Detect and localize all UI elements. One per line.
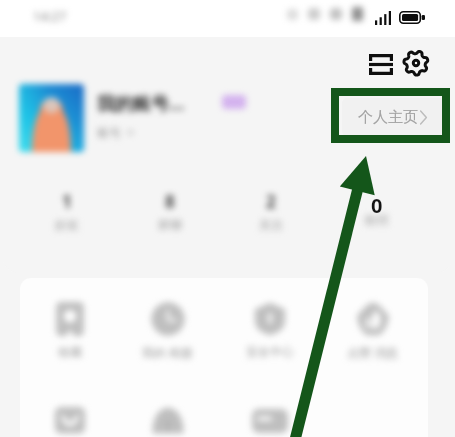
staticText: 8 [165, 190, 175, 213]
staticText: 好友 [55, 217, 79, 232]
staticText: 收藏 [58, 344, 82, 359]
button[interactable]: Nickname [97, 91, 185, 116]
button[interactable]: Cloud [123, 403, 213, 437]
button[interactable]: 2 [241, 190, 301, 240]
button[interactable]: 8 [140, 190, 200, 240]
button[interactable]: Profile avatar [19, 84, 84, 152]
button[interactable]: Settings [394, 41, 438, 85]
button[interactable]: Likes [328, 302, 418, 364]
staticText: 安全中心 [246, 344, 294, 359]
button[interactable]: 粉丝 [347, 190, 407, 240]
staticText: 关注 [259, 217, 283, 232]
button[interactable]: 0 [353, 192, 401, 216]
staticText: 0 [371, 192, 383, 216]
staticText: 我的账号… [97, 91, 185, 116]
staticText: 点赞 消息 [347, 344, 399, 360]
staticText: 群聊 [158, 217, 182, 232]
button[interactable]: Mail [25, 403, 115, 437]
button[interactable]: History [123, 302, 213, 364]
button[interactable]: Wallet [225, 403, 315, 437]
staticText: 账号 > [97, 124, 135, 140]
staticText: 粉丝 [365, 212, 389, 227]
staticText: 14:27 [33, 7, 67, 25]
button[interactable]: 1 [37, 190, 97, 240]
staticText: 1 [62, 190, 72, 213]
staticText: 2 [266, 190, 276, 213]
button[interactable]: Security [225, 302, 315, 364]
staticText: 个人主页 [358, 108, 418, 127]
button[interactable]: 个人主页 [342, 98, 444, 136]
staticText: 我的 相册 [142, 344, 194, 360]
button[interactable]: Split screen [359, 42, 403, 86]
button[interactable]: Favourites [25, 302, 115, 364]
